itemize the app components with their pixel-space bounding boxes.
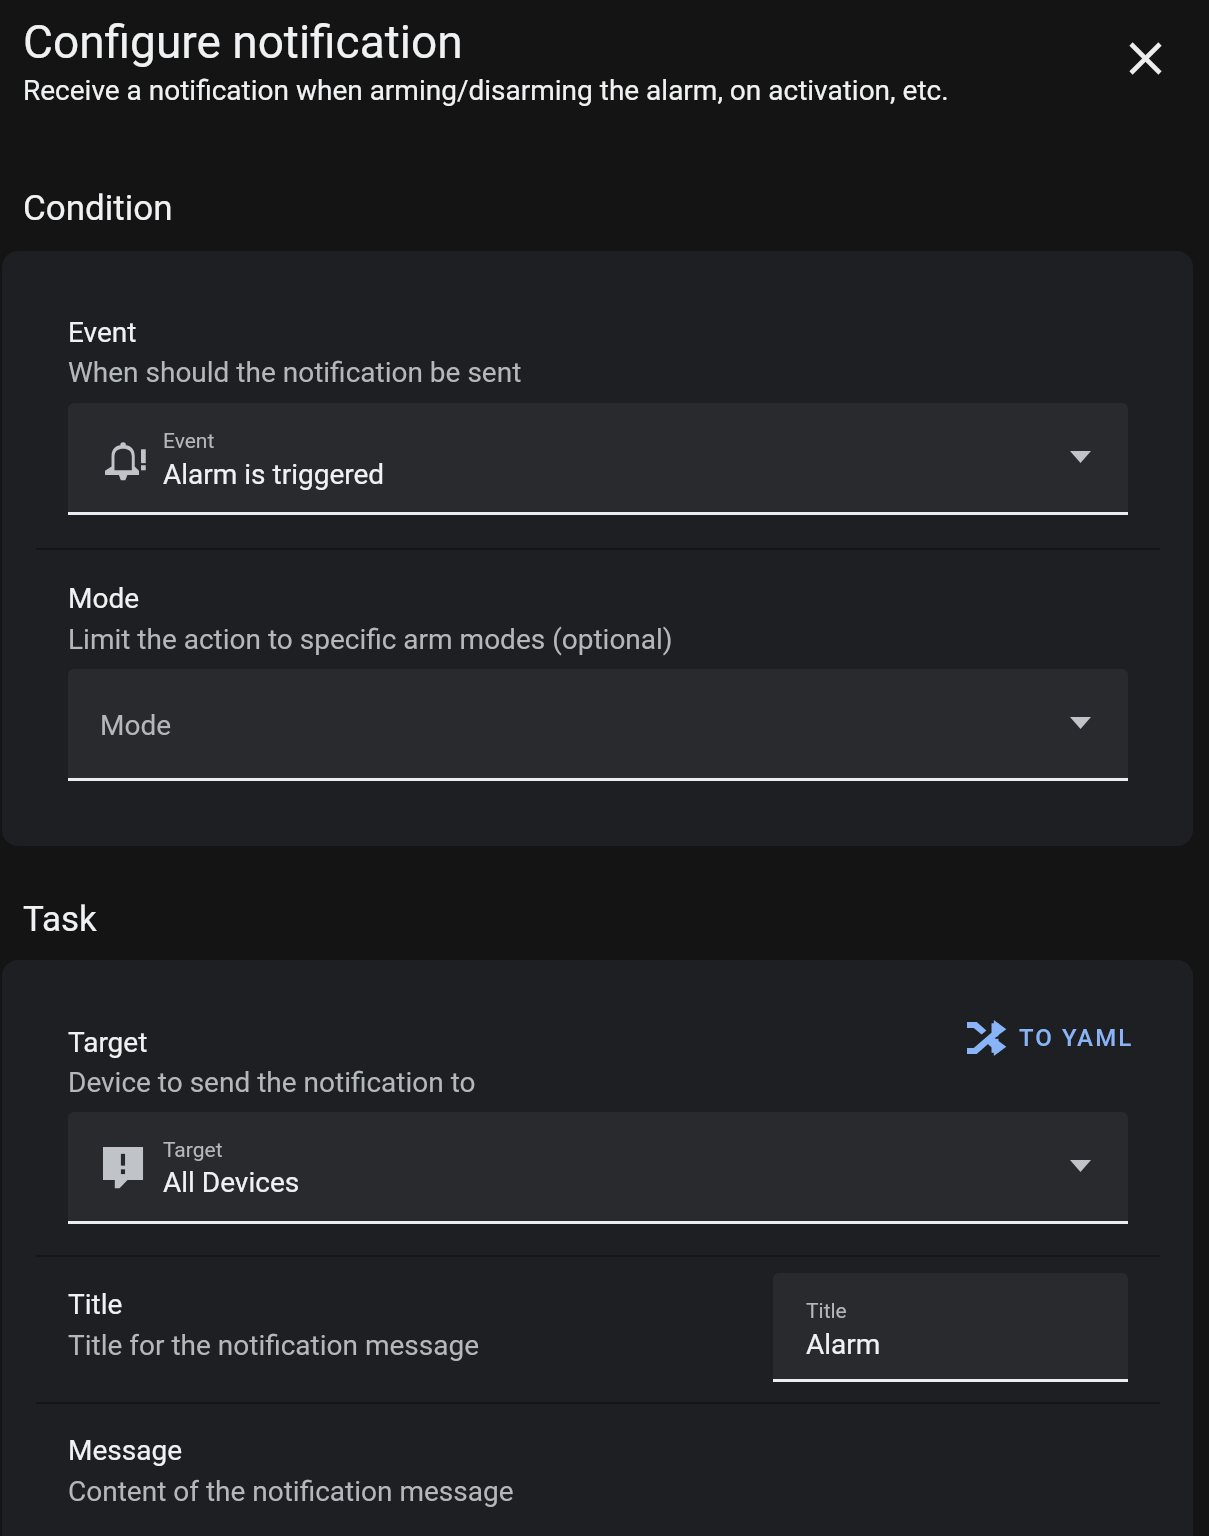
staticText: Condition (23, 188, 173, 229)
staticText: Event (163, 429, 215, 454)
staticText: Alarm (806, 1328, 881, 1361)
button[interactable]: TO YAML (953, 1009, 1147, 1067)
staticText: Event (68, 316, 137, 349)
button[interactable]: Close (1113, 26, 1177, 90)
staticText: Title for the notification message (68, 1329, 480, 1362)
staticText: Content of the notification message (68, 1475, 514, 1508)
staticText: Receive a notification when arming/disar… (23, 74, 949, 107)
staticText: Title (68, 1288, 123, 1321)
button[interactable]: Dropdown (68, 403, 1128, 515)
staticText: Mode (68, 582, 140, 615)
staticText: When should the notification be sent (68, 356, 522, 389)
staticText: Title (806, 1299, 847, 1324)
button[interactable]: Dropdown (68, 669, 1128, 781)
staticText: TO YAML (1019, 1024, 1134, 1052)
staticText: Mode (100, 709, 172, 742)
staticText: Task (23, 899, 97, 940)
button[interactable]: Dropdown (68, 1112, 1128, 1224)
staticText: Message (68, 1434, 182, 1467)
staticText: Target (163, 1138, 223, 1163)
staticText: Configure notification (23, 15, 463, 69)
staticText: Alarm is triggered (163, 458, 385, 491)
staticText: All Devices (163, 1166, 300, 1199)
staticText: Device to send the notification to (68, 1066, 476, 1099)
staticText: Limit the action to specific arm modes (… (68, 623, 673, 656)
staticText: Target (68, 1026, 148, 1059)
button[interactable]: Title input (773, 1273, 1128, 1382)
